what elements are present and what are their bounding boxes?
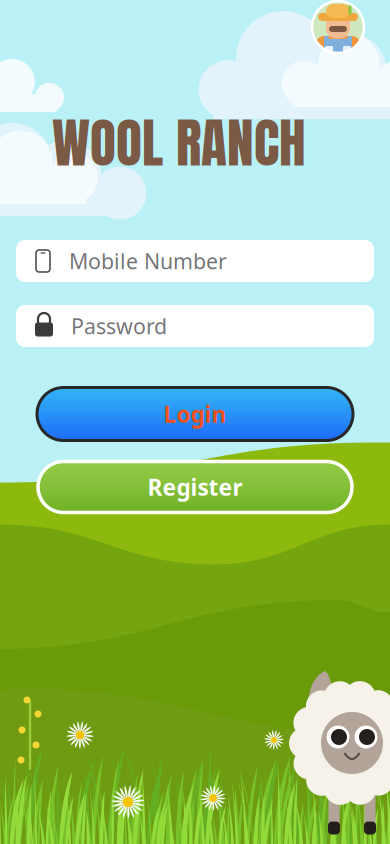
button[interactable]: Login — [37, 387, 353, 440]
button[interactable]: Profile — [312, 1, 364, 53]
staticText: Mobile Number — [69, 247, 227, 275]
staticText: Register — [147, 472, 242, 502]
button[interactable]: Mobile Number — [16, 240, 374, 282]
staticText: WOOL RANCH — [52, 103, 306, 183]
staticText: Login — [163, 399, 226, 429]
button[interactable]: Register — [38, 461, 352, 512]
staticText: Password — [71, 312, 167, 340]
button[interactable]: Password — [16, 305, 374, 347]
